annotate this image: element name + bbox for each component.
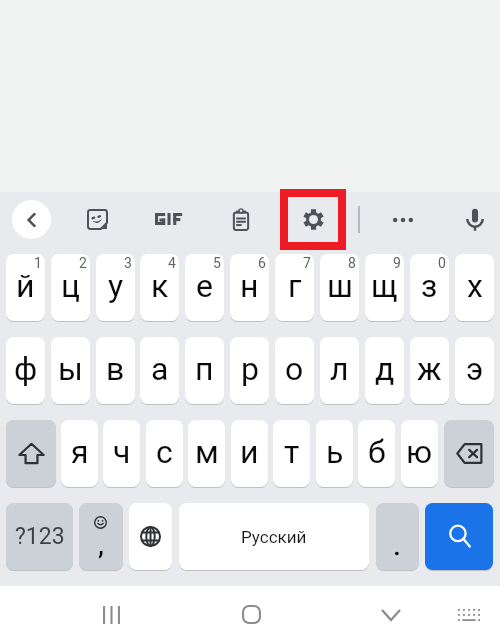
button[interactable]: ш	[320, 254, 359, 321]
staticText: щ	[371, 267, 398, 305]
staticText: т	[284, 433, 300, 471]
staticText: я	[71, 433, 89, 471]
button[interactable]: и	[231, 420, 268, 487]
button[interactable]: Voice input	[455, 199, 495, 239]
button[interactable]: л	[320, 337, 359, 404]
button[interactable]: б	[358, 420, 395, 487]
button[interactable]: о	[275, 337, 314, 404]
button[interactable]: д	[365, 337, 404, 404]
staticText: ь	[326, 433, 344, 471]
staticText: й	[16, 267, 35, 305]
button[interactable]: Русский	[179, 503, 369, 570]
staticText: 6	[258, 255, 266, 271]
button[interactable]: ы	[51, 337, 90, 404]
button[interactable]: ь	[316, 420, 353, 487]
button[interactable]: Recent apps	[87, 586, 135, 643]
staticText: ф	[14, 350, 38, 388]
button[interactable]: р	[230, 337, 269, 404]
button[interactable]: п	[185, 337, 224, 404]
button[interactable]: Clipboard	[221, 201, 261, 239]
button[interactable]: ?123	[6, 503, 73, 570]
staticText: у	[108, 267, 124, 305]
staticText: ю	[406, 433, 433, 471]
button[interactable]: е	[185, 254, 224, 321]
staticText: 7	[303, 255, 311, 271]
button[interactable]: Stickers	[77, 200, 117, 238]
staticText: 2	[79, 255, 87, 271]
staticText: х	[467, 267, 483, 305]
button[interactable]: Period	[376, 503, 419, 570]
staticText: к	[151, 267, 169, 305]
button[interactable]: More options	[383, 200, 423, 240]
staticText: ж	[417, 350, 442, 388]
button[interactable]: х	[455, 254, 494, 321]
staticText: 5	[213, 255, 221, 271]
button[interactable]: э	[455, 337, 494, 404]
staticText: е	[196, 267, 213, 305]
staticText: ?123	[15, 523, 65, 550]
button[interactable]: Switch keyboard	[445, 586, 493, 643]
staticText: ы	[58, 350, 83, 388]
staticText: ц	[61, 267, 80, 305]
staticText: л	[330, 350, 349, 388]
staticText: г	[288, 267, 302, 305]
button[interactable]: т	[273, 420, 310, 487]
staticText: п	[195, 350, 214, 388]
button[interactable]: м	[188, 420, 225, 487]
staticText: ч	[113, 433, 131, 471]
staticText: р	[241, 350, 259, 388]
button[interactable]: ц	[51, 254, 90, 321]
staticText: 8	[348, 255, 356, 271]
button[interactable]: з	[410, 254, 449, 321]
staticText: Русский	[241, 527, 307, 547]
staticText: н	[240, 267, 259, 305]
button[interactable]: Hide keyboard	[367, 586, 415, 643]
staticText: 3	[124, 255, 132, 271]
button[interactable]: у	[96, 254, 135, 321]
staticText: 4	[168, 255, 176, 271]
button[interactable]: я	[61, 420, 98, 487]
button[interactable]: щ	[365, 254, 404, 321]
button[interactable]: а	[140, 337, 179, 404]
button[interactable]: Back	[12, 200, 51, 239]
button[interactable]: к	[140, 254, 179, 321]
button[interactable]: г	[275, 254, 314, 321]
button[interactable]: Backspace	[444, 420, 494, 487]
button[interactable]: Home	[227, 586, 275, 643]
button[interactable]: Change keyboard language	[129, 503, 172, 570]
staticText: д	[375, 350, 395, 388]
button[interactable]: й	[6, 254, 45, 321]
button[interactable]: ф	[6, 337, 45, 404]
staticText: в	[106, 350, 125, 388]
button[interactable]: Shift	[6, 420, 56, 487]
button[interactable]: Settings	[288, 197, 338, 242]
staticText: 0	[438, 255, 446, 271]
staticText: и	[240, 433, 259, 471]
staticText: м	[195, 433, 219, 471]
button[interactable]: в	[96, 337, 135, 404]
button[interactable]: ю	[401, 420, 438, 487]
staticText: о	[285, 350, 304, 388]
staticText: а	[151, 350, 169, 388]
button[interactable]: н	[230, 254, 269, 321]
button[interactable]: GIF	[147, 200, 191, 238]
staticText: з	[421, 267, 438, 305]
button[interactable]: ч	[103, 420, 140, 487]
button[interactable]: Emoji	[79, 503, 123, 570]
staticText: б	[368, 433, 386, 471]
staticText: 1	[34, 255, 42, 271]
staticText: э	[466, 350, 484, 388]
staticText: ,	[98, 526, 104, 561]
staticText: ш	[327, 267, 353, 305]
staticText: с	[156, 433, 173, 471]
button[interactable]: с	[146, 420, 183, 487]
button[interactable]: Search	[425, 503, 493, 570]
staticText: 9	[393, 255, 401, 271]
button[interactable]: ж	[410, 337, 449, 404]
